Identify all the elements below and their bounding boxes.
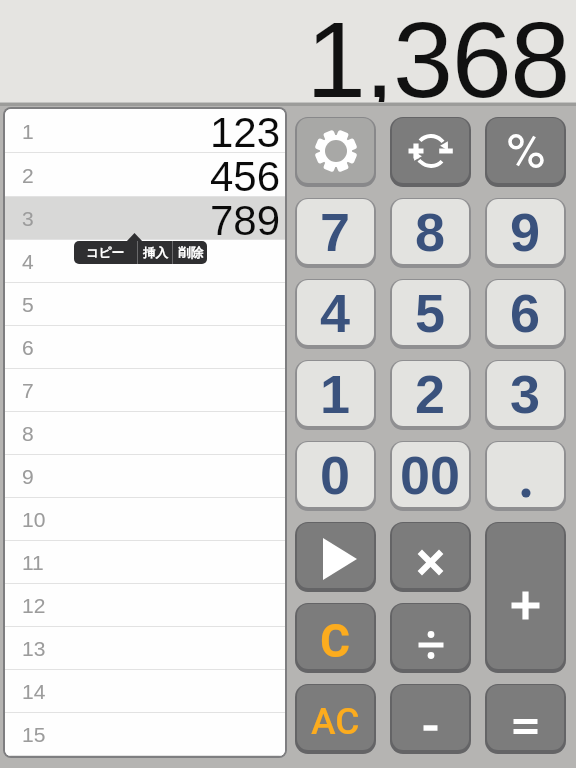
button[interactable]: [390, 117, 471, 187]
button[interactable]: AC: [295, 684, 376, 754]
staticText: 2: [22, 164, 34, 187]
staticText: 1,368: [306, 0, 569, 105]
button[interactable]: 8: [5, 412, 285, 455]
staticText: コピー: [86, 245, 125, 261]
staticText: 7: [22, 379, 34, 402]
staticText: 12: [22, 594, 46, 617]
button[interactable]: 12: [5, 584, 285, 627]
button[interactable]: [390, 522, 471, 592]
button[interactable]: 7: [295, 198, 376, 268]
button[interactable]: 8: [390, 198, 471, 268]
button[interactable]: 10: [5, 498, 285, 541]
button[interactable]: 15: [5, 713, 285, 756]
staticText: 3: [510, 364, 541, 424]
staticText: 4: [22, 250, 34, 273]
button[interactable]: [390, 684, 471, 754]
button[interactable]: 2: [390, 360, 471, 430]
button[interactable]: 3: [5, 197, 285, 240]
staticText: 123: [210, 109, 281, 153]
button[interactable]: [390, 603, 471, 673]
staticText: AC: [311, 700, 360, 743]
staticText: 挿入: [143, 245, 168, 261]
staticText: 13: [22, 637, 46, 660]
staticText: 11: [22, 551, 44, 574]
button[interactable]: 6: [5, 326, 285, 369]
staticText: 15: [22, 723, 46, 746]
staticText: C: [320, 614, 351, 668]
staticText: 5: [415, 283, 446, 343]
staticText: 8: [415, 202, 446, 262]
button[interactable]: C: [295, 603, 376, 673]
button[interactable]: 9: [485, 198, 566, 268]
staticText: 3: [22, 207, 34, 230]
button[interactable]: 5: [5, 283, 285, 326]
staticText: 5: [22, 293, 34, 316]
button[interactable]: コピー: [74, 241, 137, 264]
staticText: 9: [22, 465, 34, 488]
staticText: 7: [320, 202, 351, 262]
button[interactable]: 13: [5, 627, 285, 670]
button[interactable]: 2: [5, 153, 285, 197]
button[interactable]: 1: [5, 109, 285, 153]
button[interactable]: [485, 684, 566, 754]
button[interactable]: [485, 117, 566, 187]
button[interactable]: 6: [485, 279, 566, 349]
button[interactable]: 7: [5, 369, 285, 412]
button[interactable]: 0: [295, 441, 376, 511]
button[interactable]: [485, 522, 566, 673]
staticText: 8: [22, 422, 34, 445]
staticText: 10: [22, 508, 46, 531]
staticText: 削除: [178, 245, 203, 261]
button[interactable]: 14: [5, 670, 285, 713]
button[interactable]: 5: [390, 279, 471, 349]
staticText: 456: [210, 153, 281, 197]
button[interactable]: 00: [390, 441, 471, 511]
button[interactable]: 1: [295, 360, 376, 430]
staticText: 1: [22, 120, 34, 143]
staticText: 789: [210, 197, 281, 240]
button[interactable]: 3: [485, 360, 566, 430]
staticText: 00: [400, 445, 461, 505]
staticText: 6: [22, 336, 34, 359]
staticText: 4: [320, 283, 351, 343]
staticText: 0: [320, 445, 351, 505]
staticText: 6: [510, 283, 541, 343]
button[interactable]: [295, 117, 376, 187]
button[interactable]: 4: [295, 279, 376, 349]
button[interactable]: 削除: [173, 241, 207, 264]
staticText: 14: [22, 680, 46, 703]
staticText: 2: [415, 364, 446, 424]
staticText: 1: [320, 364, 351, 424]
button[interactable]: 11: [5, 541, 285, 584]
button[interactable]: 4: [5, 240, 285, 283]
button[interactable]: 9: [5, 455, 285, 498]
button[interactable]: 挿入: [138, 241, 172, 264]
button[interactable]: [485, 441, 566, 511]
button[interactable]: [295, 522, 376, 592]
staticText: 9: [510, 202, 541, 262]
